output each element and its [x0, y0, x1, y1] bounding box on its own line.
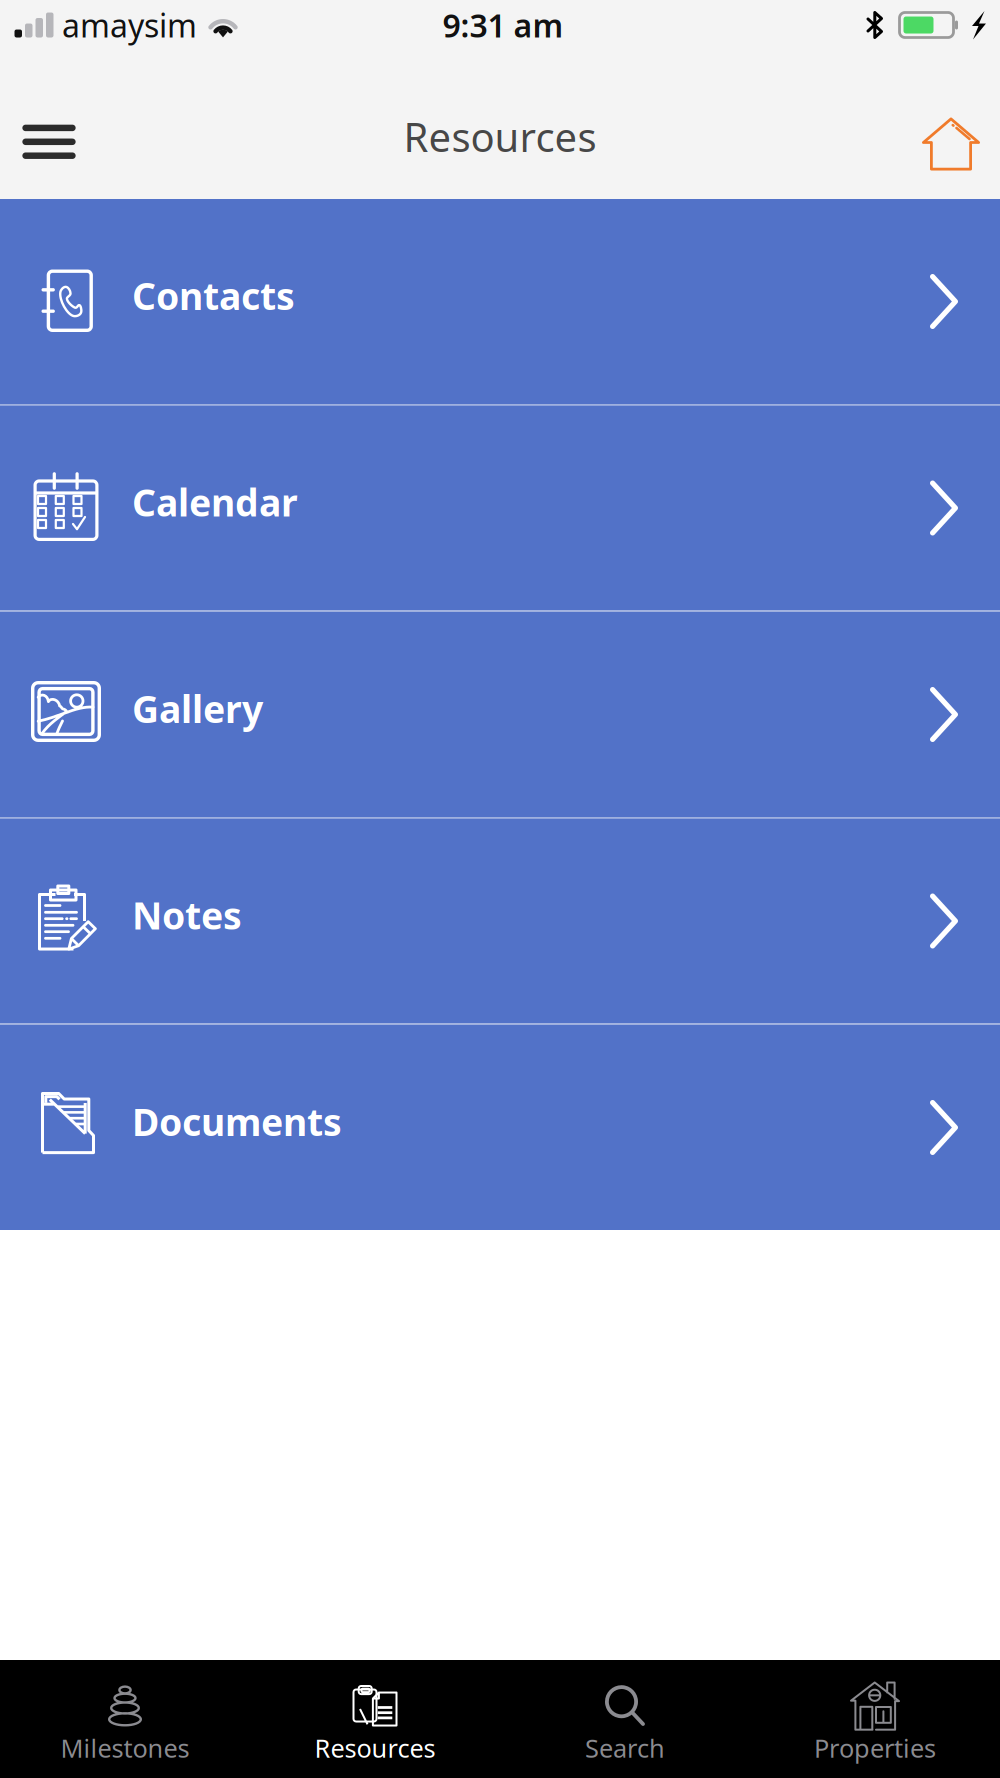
button[interactable]: Calendar	[0, 405, 1000, 610]
button[interactable]: Documents	[0, 1025, 1000, 1230]
staticText: Contacts	[132, 271, 295, 320]
button[interactable]: Properties	[750, 1660, 1000, 1778]
staticText: Milestones	[60, 1731, 189, 1765]
staticText: Calendar	[132, 477, 298, 527]
staticText: 9:31 am	[442, 4, 563, 46]
button[interactable]: Home	[902, 104, 1000, 188]
staticText: Search	[585, 1731, 665, 1765]
staticText: Documents	[132, 1097, 342, 1146]
button[interactable]: Menu	[0, 104, 98, 188]
button[interactable]: Gallery	[0, 612, 1000, 817]
staticText: Gallery	[132, 684, 263, 733]
button[interactable]: Notes	[0, 818, 1000, 1023]
staticText: Resources	[314, 1731, 435, 1765]
button[interactable]: Resources	[250, 1660, 500, 1778]
staticText: amaysim	[62, 4, 197, 46]
button[interactable]: Contacts	[0, 199, 1000, 404]
staticText: Notes	[132, 890, 242, 940]
button[interactable]: Search	[500, 1660, 750, 1778]
staticText: Resources	[403, 110, 596, 163]
button[interactable]: Milestones	[0, 1660, 250, 1778]
staticText: Properties	[814, 1731, 936, 1765]
